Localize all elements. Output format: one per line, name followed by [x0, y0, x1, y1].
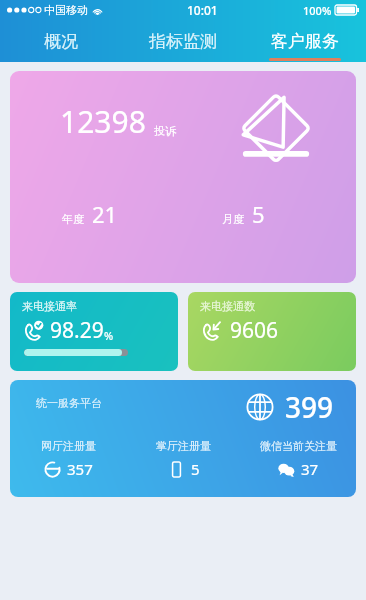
staticText: 投诉: [154, 124, 176, 138]
other: 网厅注册量: [44, 461, 61, 478]
other: 掌厅注册量: [168, 461, 185, 478]
staticText: 来电接通数: [200, 299, 255, 313]
other: 接通数: [200, 320, 222, 342]
staticText: 5: [252, 199, 265, 229]
staticText: 100%: [303, 3, 332, 18]
staticText: %: [104, 328, 114, 343]
staticText: 10:01: [187, 2, 218, 18]
staticText: 来电接通率: [22, 299, 77, 313]
staticText: 微信当前关注量: [260, 439, 337, 453]
other: 平台总量: [245, 392, 275, 422]
button[interactable]: 网厅注册量: [10, 439, 126, 479]
staticText: 客户服务: [271, 31, 339, 52]
button[interactable]: 12398: [10, 71, 356, 283]
staticText: 指标监测: [149, 31, 217, 52]
other: 微信当前关注量: [278, 461, 295, 478]
staticText: 月度: [222, 212, 244, 226]
other: 投诉信封: [240, 103, 312, 159]
button[interactable]: 掌厅注册量: [126, 439, 241, 479]
staticText: 掌厅注册量: [156, 439, 211, 453]
staticText: 21: [92, 199, 118, 229]
button[interactable]: 概况: [0, 20, 122, 62]
button[interactable]: 微信当前关注量: [241, 439, 356, 479]
staticText: 399: [285, 388, 334, 426]
staticText: 概况: [44, 31, 78, 52]
staticText: 37: [301, 459, 319, 479]
staticText: 网厅注册量: [41, 439, 96, 453]
button[interactable]: 指标监测: [122, 20, 244, 62]
staticText: 9606: [230, 316, 279, 345]
staticText: 中国移动: [44, 3, 88, 17]
other: 接通率: [22, 320, 44, 342]
button[interactable]: 客户服务: [244, 20, 366, 62]
staticText: 98.29: [50, 316, 104, 345]
staticText: 12398: [60, 101, 146, 142]
button[interactable]: 统一服务平台: [10, 380, 356, 497]
staticText: 5: [191, 459, 200, 479]
staticText: 统一服务平台: [36, 396, 102, 410]
staticText: 357: [67, 459, 93, 479]
staticText: 年度: [62, 212, 84, 226]
button[interactable]: 来电接通率: [10, 292, 178, 371]
button[interactable]: 来电接通数: [188, 292, 356, 371]
